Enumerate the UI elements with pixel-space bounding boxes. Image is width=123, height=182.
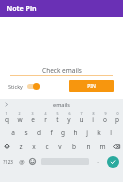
staticText: z (19, 142, 23, 151)
button[interactable]: d (32, 125, 45, 139)
button[interactable]: Sticky (8, 83, 42, 90)
staticText: n (86, 142, 91, 151)
button[interactable]: PIN (69, 80, 114, 92)
button[interactable]: a (6, 125, 19, 139)
button[interactable]: l (105, 125, 117, 139)
staticText: e (31, 115, 35, 124)
staticText: Sticky (8, 83, 23, 90)
button[interactable]: f (45, 125, 57, 139)
button[interactable]: 6 (63, 110, 75, 125)
staticText: t (56, 115, 59, 124)
button[interactable]: 1 (0, 110, 13, 125)
staticText: w (17, 115, 23, 124)
staticText: u (79, 115, 84, 124)
staticText: 7 (80, 111, 83, 116)
button[interactable]: b (67, 139, 81, 153)
button[interactable]: m (95, 139, 109, 153)
staticText: @ (19, 158, 25, 166)
staticText: ?123 (3, 159, 13, 165)
button[interactable]: ?123 (0, 153, 16, 170)
staticText: 3 (31, 111, 34, 116)
staticText: f (50, 128, 53, 137)
staticText: y (67, 115, 71, 124)
staticText: d (37, 128, 41, 137)
button[interactable]: More suggestions (0, 99, 12, 110)
button[interactable]: 2 (13, 110, 26, 125)
staticText: 0 (116, 111, 119, 116)
staticText: emails (53, 101, 70, 108)
button[interactable]: 4 (39, 110, 51, 125)
button[interactable]: g (57, 125, 69, 139)
button[interactable]: @ (16, 153, 27, 170)
button[interactable]: 9 (99, 110, 111, 125)
staticText: v (58, 142, 62, 151)
staticText: j (86, 128, 88, 137)
button[interactable]: Backspace (109, 139, 123, 153)
staticText: Check emails (42, 66, 82, 75)
staticText: a (11, 128, 15, 137)
button[interactable]: Shift (0, 139, 14, 153)
button[interactable]: z (14, 139, 27, 153)
button[interactable]: emails (53, 101, 70, 108)
staticText: b (72, 142, 76, 151)
button[interactable]: Check emails (10, 65, 113, 75)
staticText: o (103, 115, 107, 124)
staticText: PIN (87, 83, 96, 90)
button[interactable]: Enter (103, 153, 123, 170)
staticText: 5 (56, 111, 59, 116)
staticText: 9 (104, 111, 107, 116)
staticText: . (97, 157, 99, 165)
staticText: q (5, 115, 9, 124)
button[interactable]: c (40, 139, 53, 153)
button[interactable]: 7 (75, 110, 87, 125)
staticText: 6 (68, 111, 71, 116)
button[interactable]: Emoji (27, 153, 38, 170)
button[interactable]: 8 (87, 110, 99, 125)
button[interactable]: n (81, 139, 95, 153)
button[interactable]: h (69, 125, 81, 139)
staticText: 8 (92, 111, 95, 116)
staticText: g (61, 128, 65, 137)
staticText: 1 (5, 111, 8, 116)
button[interactable]: k (93, 125, 105, 139)
staticText: x (32, 142, 36, 151)
staticText: r (44, 115, 47, 124)
staticText: i (92, 115, 94, 124)
button[interactable]: x (27, 139, 40, 153)
staticText: p (115, 115, 119, 124)
staticText: k (97, 128, 101, 137)
button[interactable]: 0 (111, 110, 123, 125)
button[interactable]: 3 (26, 110, 39, 125)
staticText: s (24, 128, 28, 137)
staticText: c (45, 142, 49, 151)
staticText: 4 (44, 111, 47, 116)
button[interactable]: 5 (51, 110, 63, 125)
staticText: m (99, 142, 106, 151)
staticText: l (110, 128, 112, 137)
button[interactable]: s (19, 125, 32, 139)
button[interactable]: j (81, 125, 93, 139)
staticText: h (73, 128, 78, 137)
staticText: Note Pin (6, 4, 37, 14)
button[interactable]: v (53, 139, 67, 153)
staticText: 2 (18, 111, 21, 116)
